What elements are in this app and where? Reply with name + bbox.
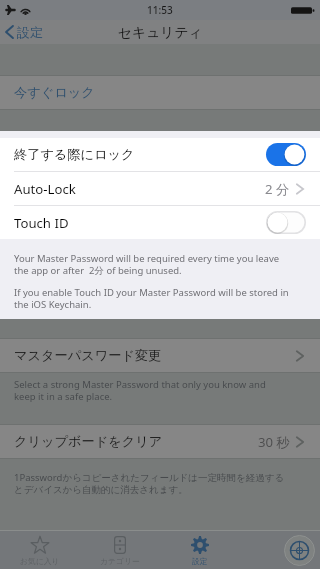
staticText: お気に入り bbox=[20, 556, 60, 566]
button[interactable]: Enabled bbox=[266, 143, 306, 166]
button[interactable]: 終了する際にロック bbox=[0, 138, 320, 171]
staticText: 2 分 bbox=[265, 180, 290, 198]
button[interactable]: 今すぐロック bbox=[0, 76, 320, 109]
staticText: セキュリティ bbox=[118, 24, 203, 41]
button[interactable]: 設定 bbox=[160, 531, 240, 569]
button[interactable]: クリップボードをクリア bbox=[0, 425, 320, 458]
button[interactable]: Touch ID bbox=[0, 206, 320, 239]
button[interactable]: お気に入り bbox=[0, 531, 80, 569]
staticText: 終了する際にロック bbox=[14, 146, 135, 163]
staticText: クリップボードをクリア bbox=[14, 433, 163, 450]
staticText: Your Master Password will be required ev… bbox=[14, 252, 280, 277]
staticText: 今すぐロック bbox=[14, 84, 95, 101]
staticText: 1Passwordからコピーされたフィールドは一定時間を経過する とデバイスから… bbox=[14, 471, 285, 496]
button[interactable]: Disabled bbox=[266, 211, 306, 234]
button[interactable]: マスターパスワード変更 bbox=[0, 339, 320, 372]
staticText: 30 秒 bbox=[258, 433, 290, 451]
button[interactable]: Auto-Lock bbox=[0, 172, 320, 205]
button[interactable]: 設定 bbox=[0, 24, 53, 40]
staticText: 設定 bbox=[192, 556, 208, 566]
button[interactable]: 1Browser bbox=[284, 535, 315, 566]
staticText: Select a strong Master Password that onl… bbox=[14, 378, 266, 403]
staticText: Touch ID bbox=[14, 214, 69, 232]
staticText: 11:53 bbox=[147, 3, 173, 17]
button[interactable]: カテゴリー bbox=[80, 531, 160, 569]
staticText: Auto-Lock bbox=[14, 180, 76, 198]
staticText: 設定 bbox=[17, 24, 43, 40]
staticText: マスターパスワード変更 bbox=[14, 347, 162, 364]
staticText: カテゴリー bbox=[100, 556, 140, 566]
staticText: If you enable Touch ID your Master Passw… bbox=[14, 286, 289, 311]
